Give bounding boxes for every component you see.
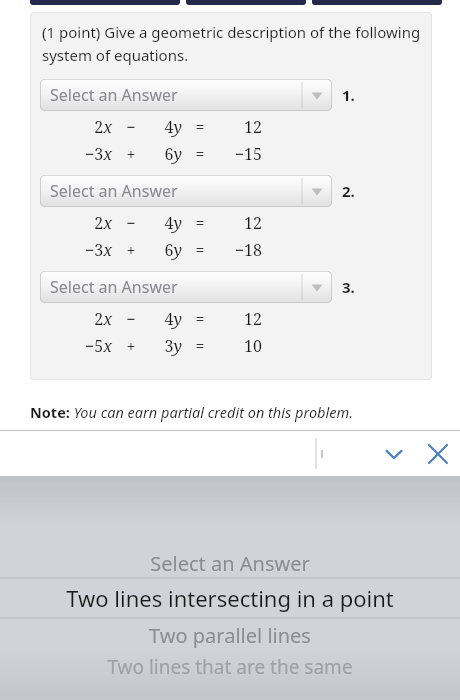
staticText: 4y [148,308,182,330]
staticText: Select an Answer [50,276,178,298]
staticText: + [122,239,140,261]
staticText: 2x [72,212,112,234]
staticText: −5x [72,335,112,357]
button[interactable]: Tab 3 [312,0,442,5]
staticText: −18 [218,239,262,261]
staticText: Two parallel lines [149,622,311,649]
staticText: 1. [342,85,355,105]
staticText: Select an Answer [150,550,310,577]
staticText: 3. [342,277,355,297]
staticText: 10 [218,335,262,357]
staticText: 4y [148,116,182,138]
staticText: Select an Answer [50,84,178,106]
button[interactable]: Select an Answer [0,546,460,580]
staticText: + [122,143,140,165]
staticText: (1 point) Give a geometric description o… [42,22,421,65]
staticText: Note: You can earn partial credit on thi… [30,402,353,422]
staticText: 3y [148,335,182,357]
staticText: 2x [72,308,112,330]
staticText: = [190,212,210,234]
staticText: − [122,116,140,138]
staticText: 6y [148,143,182,165]
staticText: 2. [342,181,355,201]
staticText: 4y [148,212,182,234]
staticText: −15 [218,143,262,165]
staticText: Select an Answer [50,180,178,202]
staticText: = [190,308,210,330]
staticText: −3x [72,239,112,261]
button[interactable]: Two lines intersecting in a point [0,581,460,615]
staticText: − [122,212,140,234]
staticText: = [190,335,210,357]
staticText: + [122,335,140,357]
button[interactable]: Two lines that are the same [0,650,460,684]
staticText: −3x [72,143,112,165]
staticText: 12 [218,308,262,330]
button[interactable]: Next field [372,430,416,477]
button[interactable]: Tab 2 [186,0,306,5]
button[interactable]: Close [418,430,458,477]
staticText: 2x [72,116,112,138]
staticText: = [190,239,210,261]
staticText: 6y [148,239,182,261]
staticText: Two lines intersecting in a point [66,583,394,613]
staticText: = [190,116,210,138]
staticText: 12 [218,116,262,138]
staticText: 12 [218,212,262,234]
staticText: Two lines that are the same [107,654,353,680]
staticText: − [122,308,140,330]
button[interactable]: Select an Answer [40,271,332,303]
button[interactable]: Select an Answer [40,79,332,111]
button[interactable]: Two parallel lines [0,618,460,652]
button[interactable]: Tab 1 [30,0,180,5]
staticText: = [190,143,210,165]
button[interactable]: Select an Answer [40,175,332,207]
